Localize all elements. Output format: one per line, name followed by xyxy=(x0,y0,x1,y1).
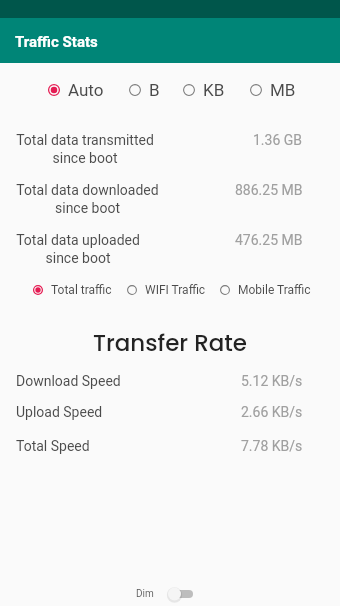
button[interactable]: Mobile Traffic xyxy=(218,283,311,297)
staticText: Auto xyxy=(68,80,104,100)
staticText: KB xyxy=(203,80,225,100)
staticText: MB xyxy=(270,80,296,100)
staticText: Dim xyxy=(136,588,154,600)
button[interactable]: WIFI Traffic xyxy=(125,283,206,297)
staticText: Total data uploaded since boot xyxy=(16,232,140,267)
staticText: Total data downloaded since boot xyxy=(16,182,159,217)
button[interactable]: MB xyxy=(248,80,296,100)
staticText: 7.78 KB/s xyxy=(241,438,303,454)
button[interactable]: Total data transmitted since boot xyxy=(0,132,340,182)
staticText: Upload Speed xyxy=(16,404,103,420)
button[interactable]: Total traffic xyxy=(31,283,112,297)
button[interactable]: KB xyxy=(181,80,225,100)
button[interactable]: Total data downloaded since boot xyxy=(0,182,340,232)
staticText: 1.36 GB xyxy=(253,132,303,148)
button[interactable]: B xyxy=(127,80,160,100)
staticText: Download Speed xyxy=(16,373,121,389)
staticText: Total traffic xyxy=(51,283,112,297)
button[interactable]: Upload Speed xyxy=(0,396,340,428)
staticText: WIFI Traffic xyxy=(145,283,206,297)
button[interactable]: Total Speed xyxy=(0,430,340,462)
button[interactable]: Dim toggle xyxy=(168,587,195,601)
button[interactable]: Total data uploaded since boot xyxy=(0,232,340,282)
staticText: Traffic Stats xyxy=(15,33,98,51)
staticText: 5.12 KB/s xyxy=(241,373,303,389)
staticText: B xyxy=(149,80,160,100)
button[interactable]: Download Speed xyxy=(0,365,340,397)
staticText: Transfer Rate xyxy=(0,327,340,359)
staticText: Total data transmitted since boot xyxy=(16,132,154,167)
staticText: 2.66 KB/s xyxy=(241,404,303,420)
staticText: Total Speed xyxy=(16,438,90,454)
staticText: Mobile Traffic xyxy=(238,283,311,297)
staticText: 886.25 MB xyxy=(235,182,303,198)
button[interactable]: Auto xyxy=(46,80,104,100)
staticText: 476.25 MB xyxy=(235,232,303,248)
